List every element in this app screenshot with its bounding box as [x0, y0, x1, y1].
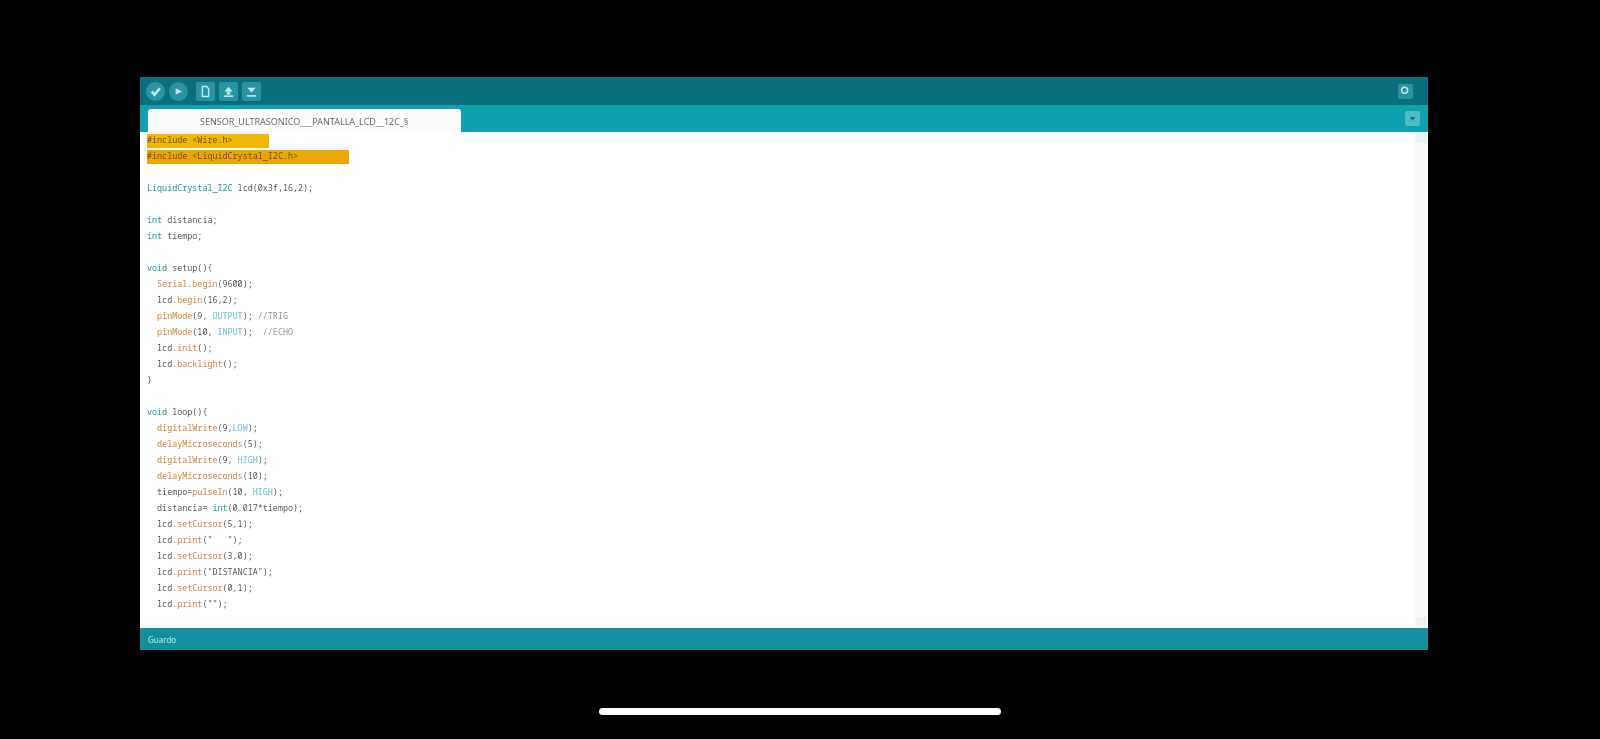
staticText: lcd.print(" ");: [147, 534, 243, 545]
staticText: pinMode(10, INPUT); //ECHO: [147, 326, 293, 337]
staticText: pinMode(9, OUTPUT); //TRIG: [147, 310, 288, 321]
staticText: lcd.print("DISTANCIA");: [147, 566, 273, 577]
staticText: distancia= int(0.017*tiempo);: [147, 502, 304, 513]
staticText: lcd.init();: [147, 342, 213, 353]
staticText: lcd.setCursor(0,1);: [147, 582, 253, 593]
staticText: void loop(){: [147, 406, 208, 417]
staticText: lcd.begin(16,2);: [147, 294, 238, 305]
button[interactable]: Verify: [145, 81, 166, 102]
staticText: lcd.print("");: [147, 598, 228, 609]
staticText: digitalWrite(9,LOW);: [147, 422, 258, 433]
staticText: lcd.setCursor(3,0);: [147, 550, 253, 561]
staticText: digitalWrite(9, HIGH);: [147, 454, 268, 465]
staticText: SENSOR_ULTRASONICO___PANTALLA_LCD__12C_§: [200, 115, 409, 127]
staticText: }: [147, 374, 153, 385]
staticText: LiquidCrystal_I2C lcd(0x3f,16,2);: [147, 182, 314, 193]
button[interactable]: SENSOR_ULTRASONICO___PANTALLA_LCD__12C_§: [148, 109, 461, 132]
staticText: #include <Wire.h>: [147, 134, 233, 145]
staticText: tiempo=pulseIn(10, HIGH);: [147, 486, 283, 497]
button[interactable]: Open sketch: [219, 82, 238, 101]
button[interactable]: Tab menu: [1405, 111, 1420, 126]
staticText: lcd.setCursor(5,1);: [147, 518, 253, 529]
staticText: Guardo: [148, 634, 177, 645]
staticText: #include <LiquidCrystal_I2C.h>: [147, 150, 299, 161]
staticText: delayMicroseconds(5);: [147, 438, 263, 449]
button[interactable]: Upload: [168, 81, 189, 102]
button[interactable]: Serial Monitor: [1397, 83, 1414, 100]
button[interactable]: New sketch: [196, 82, 215, 101]
staticText: Serial.begin(9600);: [147, 278, 253, 289]
staticText: lcd.backlight();: [147, 358, 238, 369]
button[interactable]: Save sketch: [242, 82, 261, 101]
staticText: void setup(){: [147, 262, 213, 273]
staticText: int distancia;: [147, 214, 218, 225]
staticText: int tiempo;: [147, 230, 203, 241]
staticText: delayMicroseconds(10);: [147, 470, 268, 481]
